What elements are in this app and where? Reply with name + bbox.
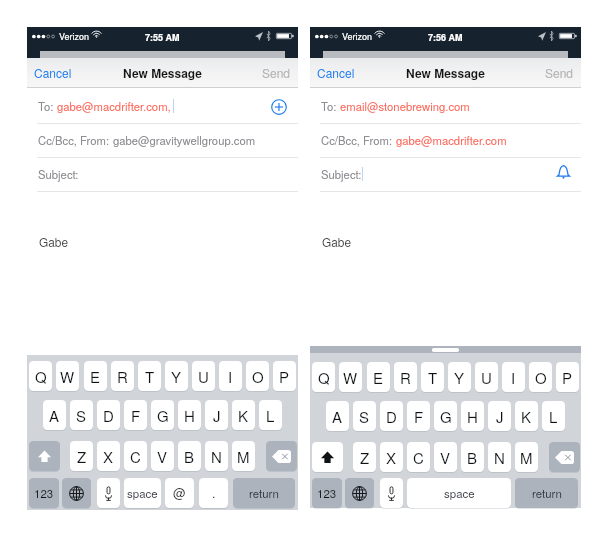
button[interactable]: Y xyxy=(448,362,471,392)
staticText: V xyxy=(440,447,451,468)
button[interactable]: Add contact xyxy=(268,96,290,118)
button[interactable] xyxy=(266,441,297,471)
button[interactable]: V xyxy=(434,442,457,472)
button[interactable]: D xyxy=(380,401,403,431)
button[interactable]: Cancel xyxy=(313,62,357,83)
staticText: F xyxy=(131,405,141,426)
button[interactable]: Notify me xyxy=(552,161,574,183)
staticText: Z xyxy=(360,447,370,468)
button[interactable]: R xyxy=(394,362,417,392)
button[interactable]: F xyxy=(407,401,430,431)
button[interactable]: G xyxy=(434,401,457,431)
button[interactable]: Y xyxy=(165,361,188,391)
button[interactable]: W xyxy=(339,362,362,392)
button[interactable]: D xyxy=(97,400,120,430)
button[interactable]: R xyxy=(111,361,134,391)
button[interactable]: L xyxy=(542,401,565,431)
button[interactable]: @ xyxy=(165,478,194,508)
staticText: O xyxy=(535,367,547,388)
button[interactable]: P xyxy=(556,362,579,392)
button[interactable]: W xyxy=(56,361,79,391)
staticText: gabe@macdrifter.com, xyxy=(57,98,171,114)
button[interactable]: I xyxy=(219,361,242,391)
button[interactable]: N xyxy=(205,441,228,471)
staticText: I xyxy=(511,367,516,388)
button[interactable]: Z xyxy=(353,442,376,472)
button[interactable]: J xyxy=(205,400,228,430)
button[interactable]: N xyxy=(488,442,511,472)
staticText: C xyxy=(130,446,141,467)
staticText: return xyxy=(249,485,279,501)
staticText: Q xyxy=(318,367,330,388)
button[interactable]: Send xyxy=(538,62,578,83)
button[interactable]: V xyxy=(151,441,174,471)
button[interactable]: Q xyxy=(29,361,52,391)
staticText: G xyxy=(157,405,169,426)
button[interactable]: I xyxy=(502,362,525,392)
button[interactable]: M xyxy=(232,441,255,471)
staticText: 7:55 AM xyxy=(145,31,180,44)
button[interactable]: Send xyxy=(255,62,295,83)
button[interactable]: F xyxy=(124,400,147,430)
button[interactable] xyxy=(345,478,374,508)
button[interactable] xyxy=(549,442,580,472)
button[interactable]: O xyxy=(529,362,552,392)
staticText: email@stonebrewing.com xyxy=(340,98,470,114)
button[interactable]: return xyxy=(515,478,578,508)
button[interactable] xyxy=(312,442,343,472)
button[interactable]: X xyxy=(380,442,403,472)
staticText: R xyxy=(117,366,128,387)
button[interactable]: X xyxy=(97,441,120,471)
staticText: Gabe xyxy=(322,233,352,250)
staticText: return xyxy=(532,485,562,501)
button[interactable]: S xyxy=(70,400,93,430)
staticText: To: xyxy=(321,98,340,114)
button[interactable]: C xyxy=(124,441,147,471)
button[interactable]: K xyxy=(515,401,538,431)
button[interactable]: . xyxy=(199,478,228,508)
button[interactable] xyxy=(380,478,403,508)
staticText: A xyxy=(49,405,60,426)
button[interactable]: P xyxy=(273,361,296,391)
button[interactable]: O xyxy=(246,361,269,391)
staticText: 123 xyxy=(317,485,337,501)
button[interactable] xyxy=(62,478,91,508)
button[interactable]: B xyxy=(178,441,201,471)
button[interactable]: K xyxy=(232,400,255,430)
button[interactable]: 123 xyxy=(312,478,342,508)
button[interactable] xyxy=(97,478,120,508)
button[interactable]: B xyxy=(461,442,484,472)
button[interactable]: E xyxy=(84,361,107,391)
button[interactable]: A xyxy=(326,401,349,431)
staticText: Q xyxy=(35,366,47,387)
button[interactable]: A xyxy=(43,400,66,430)
button[interactable]: H xyxy=(461,401,484,431)
button[interactable]: S xyxy=(353,401,376,431)
button[interactable]: 123 xyxy=(29,478,59,508)
button[interactable]: Q xyxy=(312,362,335,392)
button[interactable]: H xyxy=(178,400,201,430)
button[interactable] xyxy=(29,441,60,471)
staticText: X xyxy=(103,446,114,467)
staticText: M xyxy=(520,447,533,468)
button[interactable]: U xyxy=(192,361,215,391)
staticText: 123 xyxy=(34,485,54,501)
button[interactable]: E xyxy=(367,362,390,392)
button[interactable]: L xyxy=(259,400,282,430)
button[interactable]: return xyxy=(233,478,295,508)
staticText: N xyxy=(211,446,222,467)
button[interactable]: T xyxy=(421,362,444,392)
button[interactable]: J xyxy=(488,401,511,431)
staticText: P xyxy=(279,366,290,387)
button[interactable]: T xyxy=(138,361,161,391)
button[interactable]: G xyxy=(151,400,174,430)
button[interactable]: Z xyxy=(70,441,93,471)
staticText: K xyxy=(521,406,532,427)
button[interactable]: Cancel xyxy=(30,62,74,83)
staticText: Gabe xyxy=(39,233,69,250)
button[interactable]: space xyxy=(124,478,161,508)
button[interactable]: space xyxy=(407,478,511,508)
button[interactable]: U xyxy=(475,362,498,392)
button[interactable]: M xyxy=(515,442,538,472)
button[interactable]: C xyxy=(407,442,430,472)
